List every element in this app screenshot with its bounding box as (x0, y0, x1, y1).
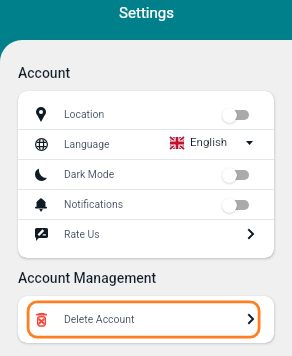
button[interactable]: Rate Us (18, 220, 274, 249)
button[interactable]: Dark Mode toggle (222, 167, 249, 183)
button[interactable]: Language (18, 130, 274, 159)
staticText: Settings (119, 4, 174, 22)
staticText: English (190, 135, 228, 148)
button[interactable]: Location toggle (222, 107, 249, 123)
button[interactable]: Notifications toggle (222, 197, 249, 213)
staticText: Location (64, 108, 105, 120)
button[interactable]: Delete Account (18, 296, 274, 343)
staticText: Account Management (18, 270, 157, 286)
staticText: Language (64, 138, 110, 150)
staticText: Account (18, 65, 71, 81)
button[interactable]: English (170, 138, 253, 151)
staticText: Rate Us (64, 228, 100, 240)
button[interactable]: Location (18, 100, 274, 129)
button[interactable]: Notifications (18, 190, 274, 219)
staticText: Delete Account (64, 313, 135, 325)
button[interactable]: Dark Mode (18, 160, 274, 189)
staticText: Notifications (64, 198, 124, 210)
staticText: Dark Mode (64, 168, 115, 180)
